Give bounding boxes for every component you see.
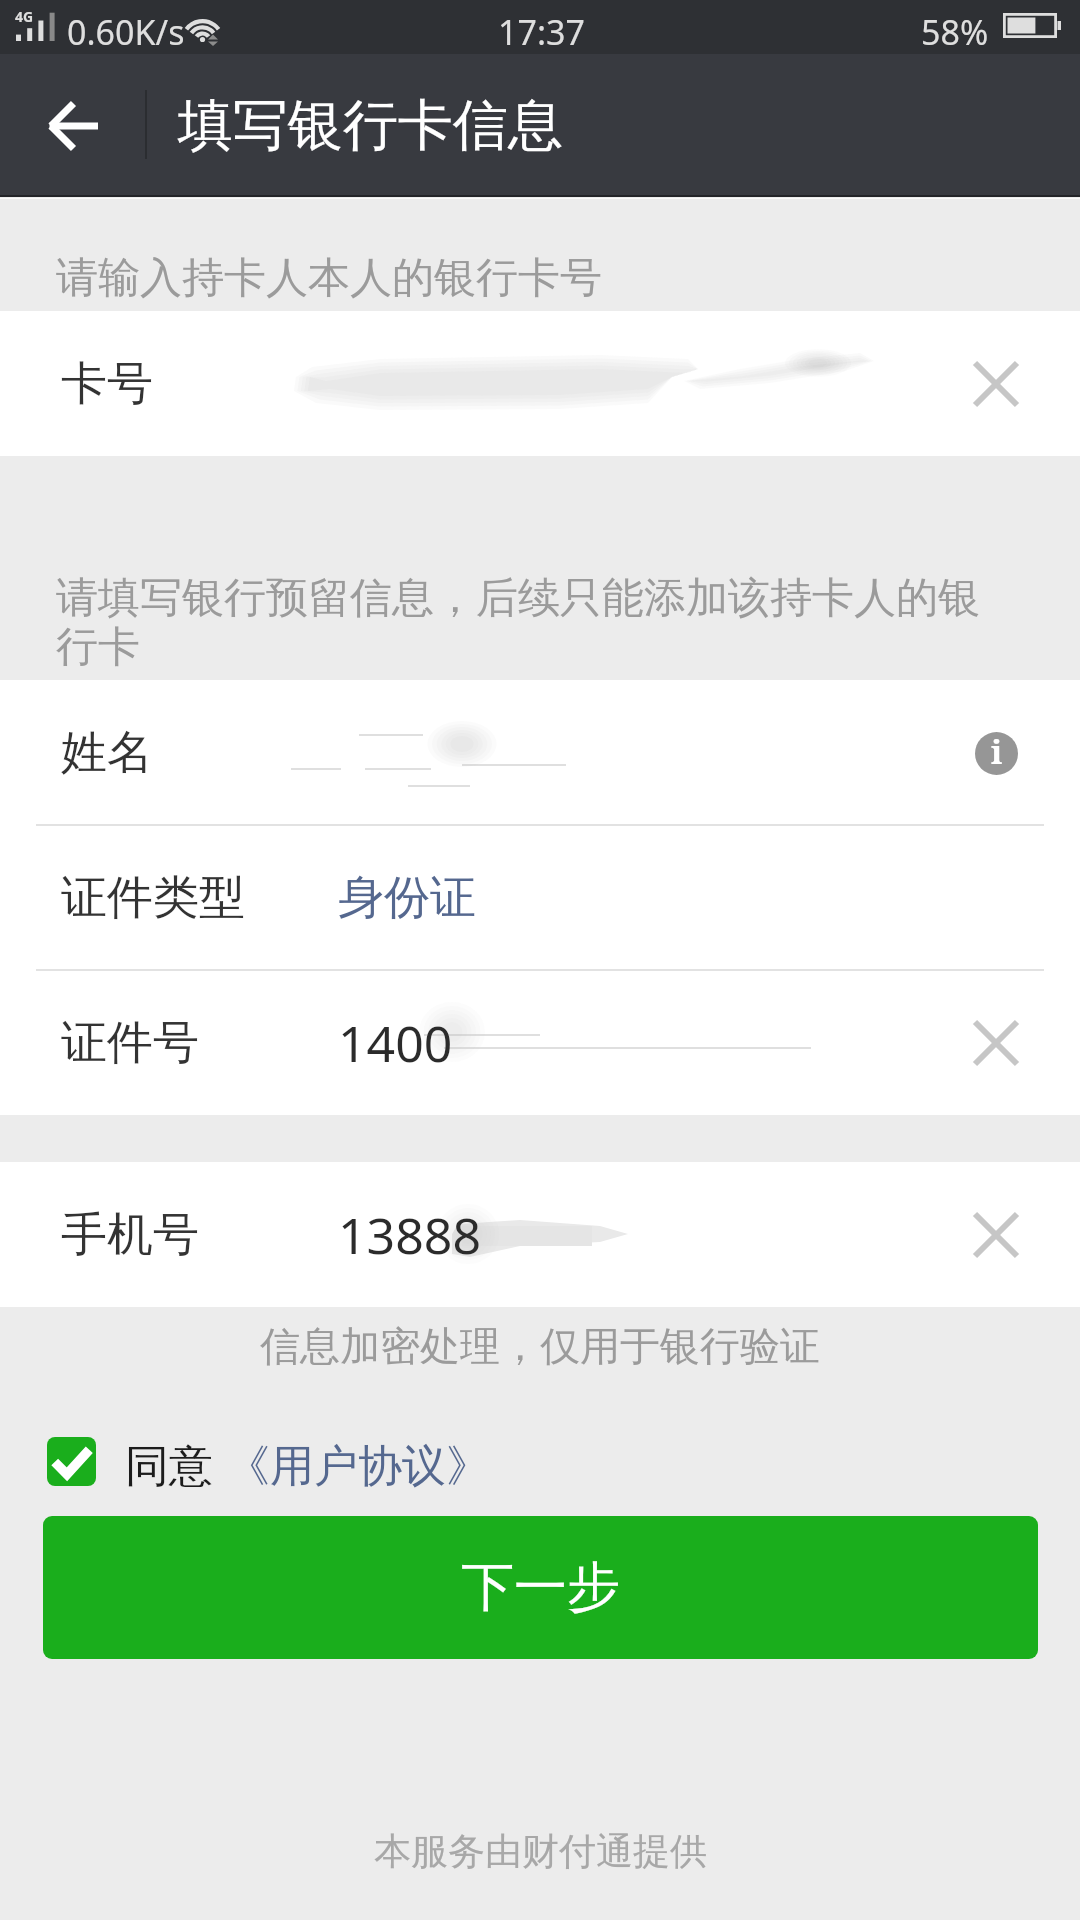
staticText: 姓名	[61, 724, 153, 782]
staticText: 证件号	[61, 1014, 199, 1072]
staticText: 17:37	[498, 9, 585, 55]
staticText: 下一步	[461, 1554, 620, 1621]
button[interactable]: Agree to user agreement	[47, 1437, 96, 1486]
staticText: 证件类型	[61, 869, 245, 927]
staticText: 填写银行卡信息	[178, 91, 563, 160]
staticText: 手机号	[61, 1206, 199, 1264]
button[interactable]: 《用户协议》	[226, 1439, 490, 1494]
staticText: 卡号	[61, 355, 153, 413]
staticText: 请填写银行预留信息，后续只能添加该持卡人的银行卡	[56, 572, 991, 673]
staticText: 4G	[15, 7, 34, 26]
button[interactable]: 下一步	[43, 1516, 1038, 1659]
staticText: 13888	[338, 1201, 481, 1269]
button[interactable]: 证件号	[0, 970, 1080, 1115]
button[interactable]: Clear card number	[953, 341, 1039, 427]
button[interactable]: 卡号	[0, 311, 1080, 456]
staticText: 身份证	[338, 869, 476, 927]
staticText: 0.60K/s	[67, 9, 185, 55]
button[interactable]: 手机号	[0, 1162, 1080, 1307]
button[interactable]: Back	[0, 54, 145, 197]
staticText: 信息加密处理，仅用于银行验证	[260, 1321, 820, 1371]
button[interactable]: Clear ID number	[953, 1000, 1039, 1086]
staticText: 58%	[921, 9, 989, 55]
button[interactable]: Name info	[953, 710, 1039, 796]
staticText: 1400	[338, 1009, 453, 1077]
staticText: i	[991, 732, 1003, 773]
button[interactable]: 证件类型	[0, 825, 1080, 970]
staticText: 请输入持卡人本人的银行卡号	[56, 252, 602, 305]
button[interactable]: 姓名	[0, 680, 1080, 825]
button[interactable]: Clear phone number	[953, 1192, 1039, 1278]
staticText: 同意	[125, 1439, 213, 1494]
staticText: 本服务由财付通提供	[374, 1828, 707, 1875]
